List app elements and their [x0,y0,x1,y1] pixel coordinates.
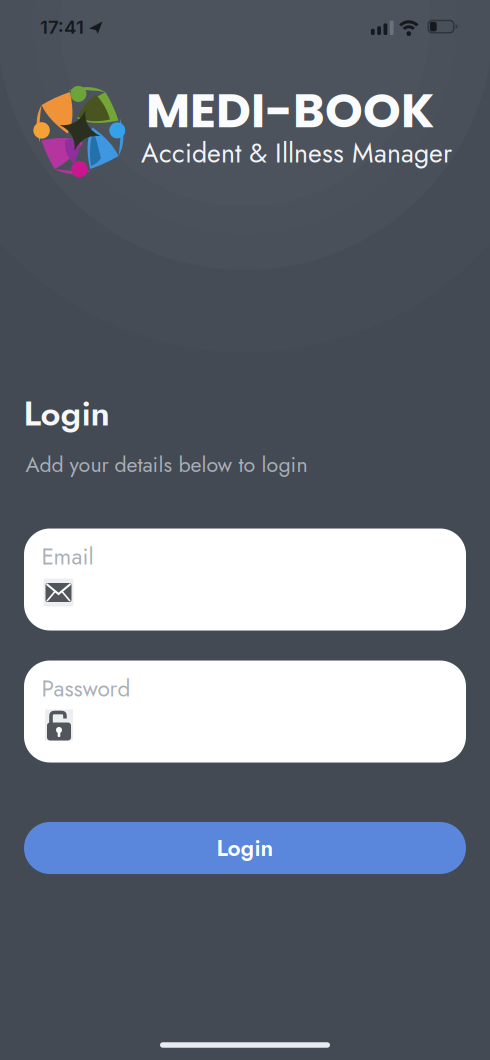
button[interactable]: Password [24,660,466,762]
staticText: Add your details below to login [25,449,307,480]
staticText: Password [41,672,130,705]
staticText: MEDI-BOOK [146,77,434,144]
staticText: Accident & Illness Manager [141,134,452,172]
staticText: Login [216,832,273,864]
staticText: 17:41 [40,16,84,38]
button[interactable]: Email [24,528,466,630]
staticText: Email [41,540,93,573]
staticText: Login [23,388,109,438]
button[interactable]: Login [24,822,466,874]
